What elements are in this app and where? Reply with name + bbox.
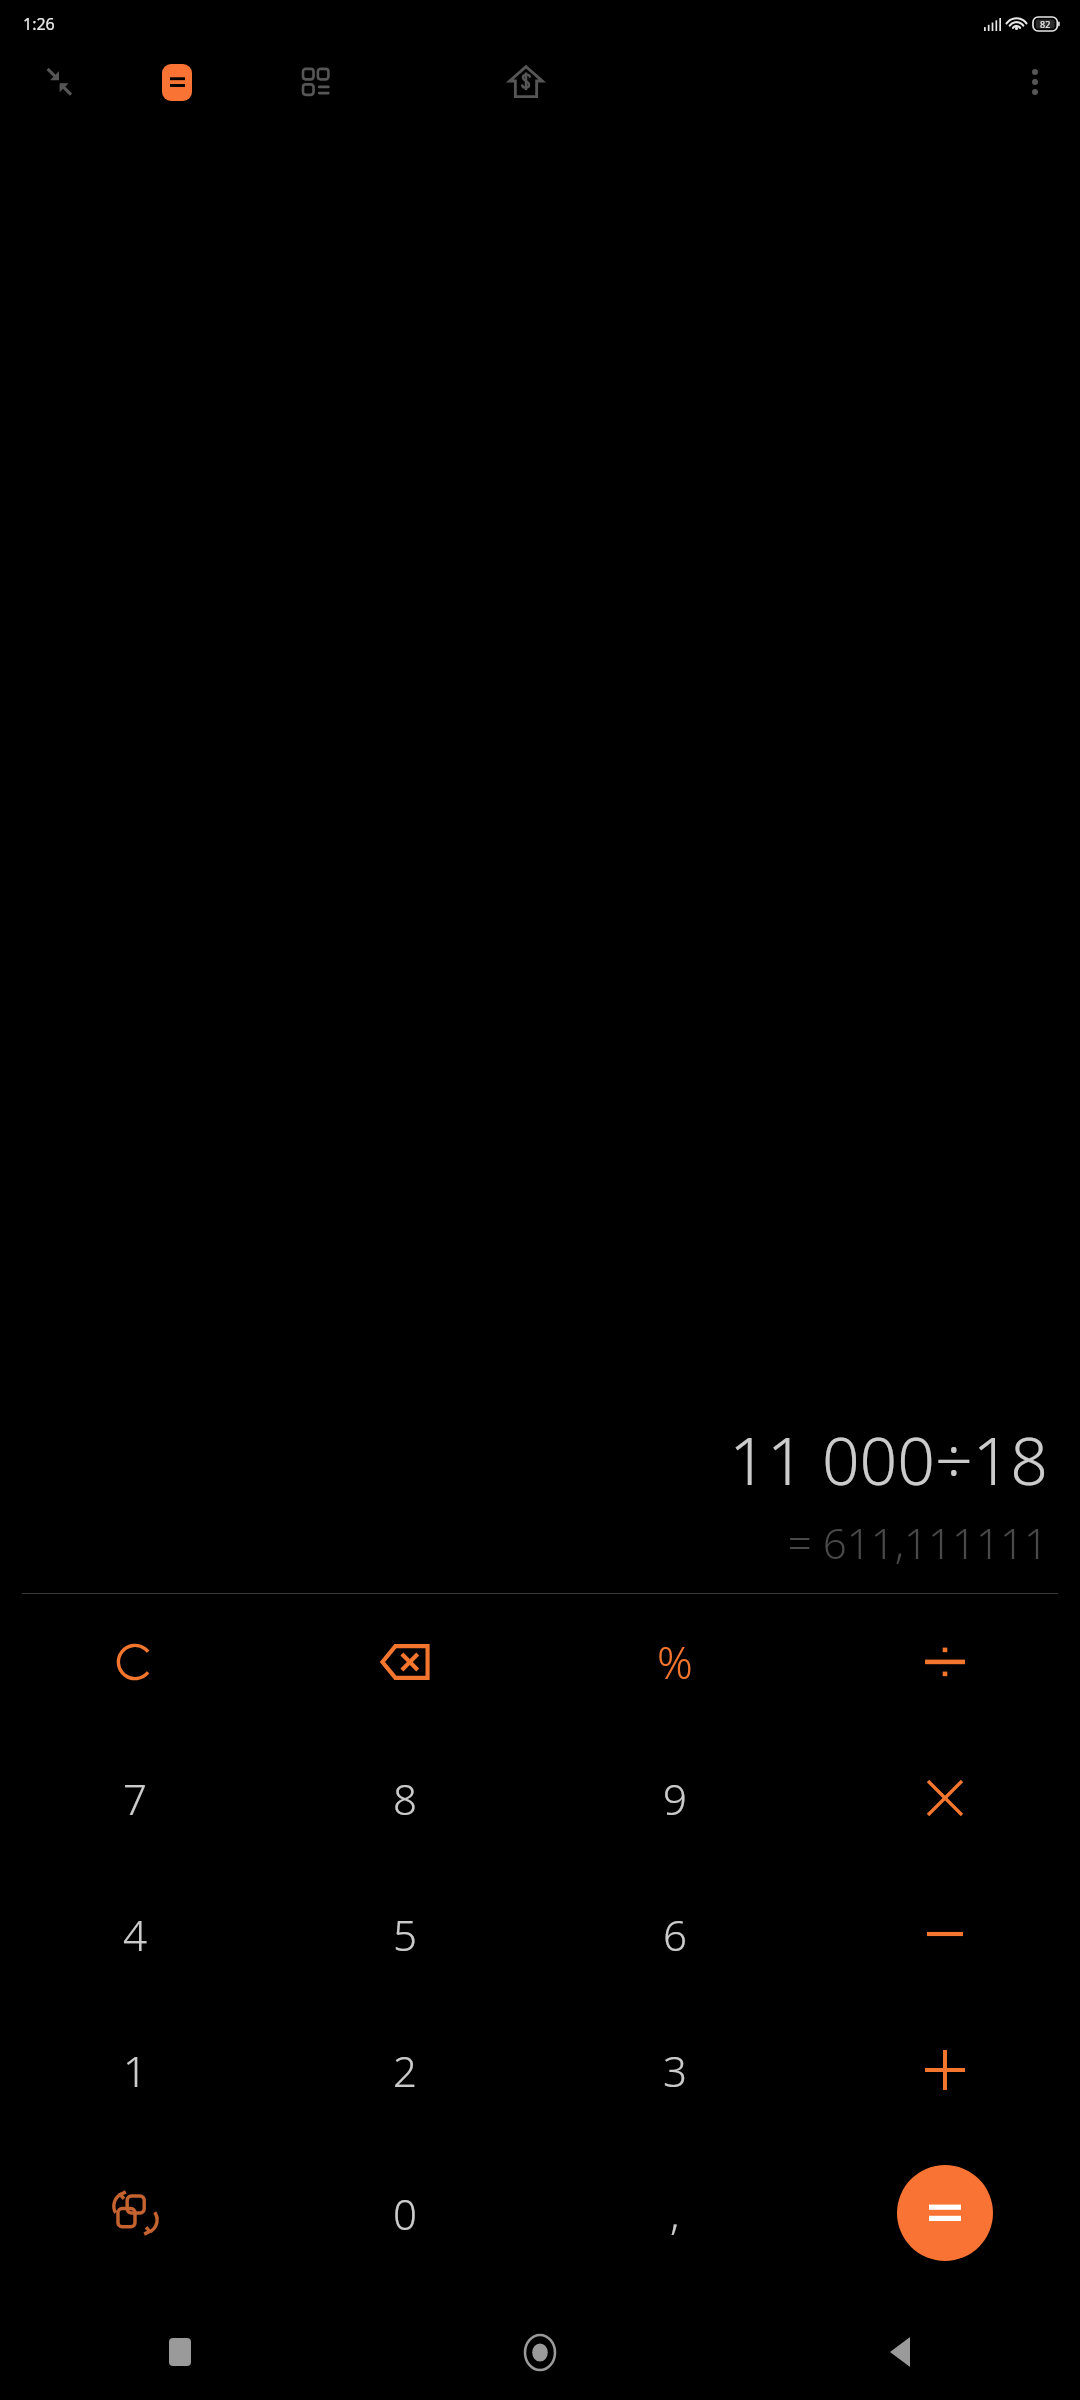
staticText: 11 000÷18 <box>0 1414 1048 1504</box>
button[interactable]: Subtract <box>810 1866 1080 2002</box>
button[interactable]: 3 <box>540 2002 810 2138</box>
staticText: 6 <box>663 1906 687 1963</box>
button[interactable]: 2 <box>270 2002 540 2138</box>
button[interactable]: 4 <box>0 1866 270 2002</box>
button[interactable]: , <box>540 2138 810 2288</box>
button[interactable]: Divide <box>810 1594 1080 1730</box>
button[interactable]: Back <box>720 2304 1080 2400</box>
button[interactable]: Backspace <box>270 1594 540 1730</box>
staticText: 2 <box>393 2042 417 2099</box>
button[interactable]: 5 <box>270 1866 540 2002</box>
staticText: 0 <box>393 2185 417 2242</box>
button[interactable]: 8 <box>270 1730 540 1866</box>
button[interactable]: Collapse <box>0 47 118 117</box>
staticText: , <box>670 2185 680 2242</box>
other: Backspace <box>381 1644 429 1680</box>
button[interactable]: % <box>540 1594 810 1730</box>
other: Add <box>925 2050 965 2090</box>
button[interactable]: 0 <box>270 2138 540 2288</box>
other: Convert units <box>112 2190 158 2236</box>
button[interactable]: Home <box>360 2304 720 2400</box>
button[interactable]: Clear <box>0 1594 270 1730</box>
button[interactable]: More options <box>990 47 1080 117</box>
button[interactable]: Recents <box>0 2304 360 2400</box>
other: Clear <box>115 1642 155 1682</box>
other: Multiply <box>928 1781 962 1815</box>
staticText: = 611,111111 <box>0 1514 1048 1571</box>
staticText: 7 <box>123 1770 147 1827</box>
button[interactable]: 7 <box>0 1730 270 1866</box>
button[interactable]: 6 <box>540 1866 810 2002</box>
button[interactable]: Add <box>810 2002 1080 2138</box>
staticText: 9 <box>663 1770 687 1827</box>
staticText: % <box>657 1632 693 1692</box>
button[interactable]: Calculator <box>118 47 236 117</box>
other: Divide <box>925 1642 965 1682</box>
staticText: 4 <box>123 1906 147 1963</box>
other: Subtract <box>927 1916 963 1952</box>
staticText: 1:26 <box>23 13 55 35</box>
button[interactable]: 1 <box>0 2002 270 2138</box>
staticText: 1 <box>123 2042 147 2099</box>
staticText: 5 <box>393 1906 417 1963</box>
button[interactable]: Layouts <box>236 47 401 117</box>
button[interactable]: Mortgage calculator <box>401 47 651 117</box>
staticText: 82 <box>1040 18 1051 30</box>
staticText: 3 <box>663 2042 687 2099</box>
button[interactable]: Equals <box>897 2165 993 2261</box>
button[interactable]: Convert units <box>0 2138 270 2288</box>
button[interactable]: 9 <box>540 1730 810 1866</box>
button[interactable]: Multiply <box>810 1730 1080 1866</box>
staticText: 8 <box>393 1770 417 1827</box>
